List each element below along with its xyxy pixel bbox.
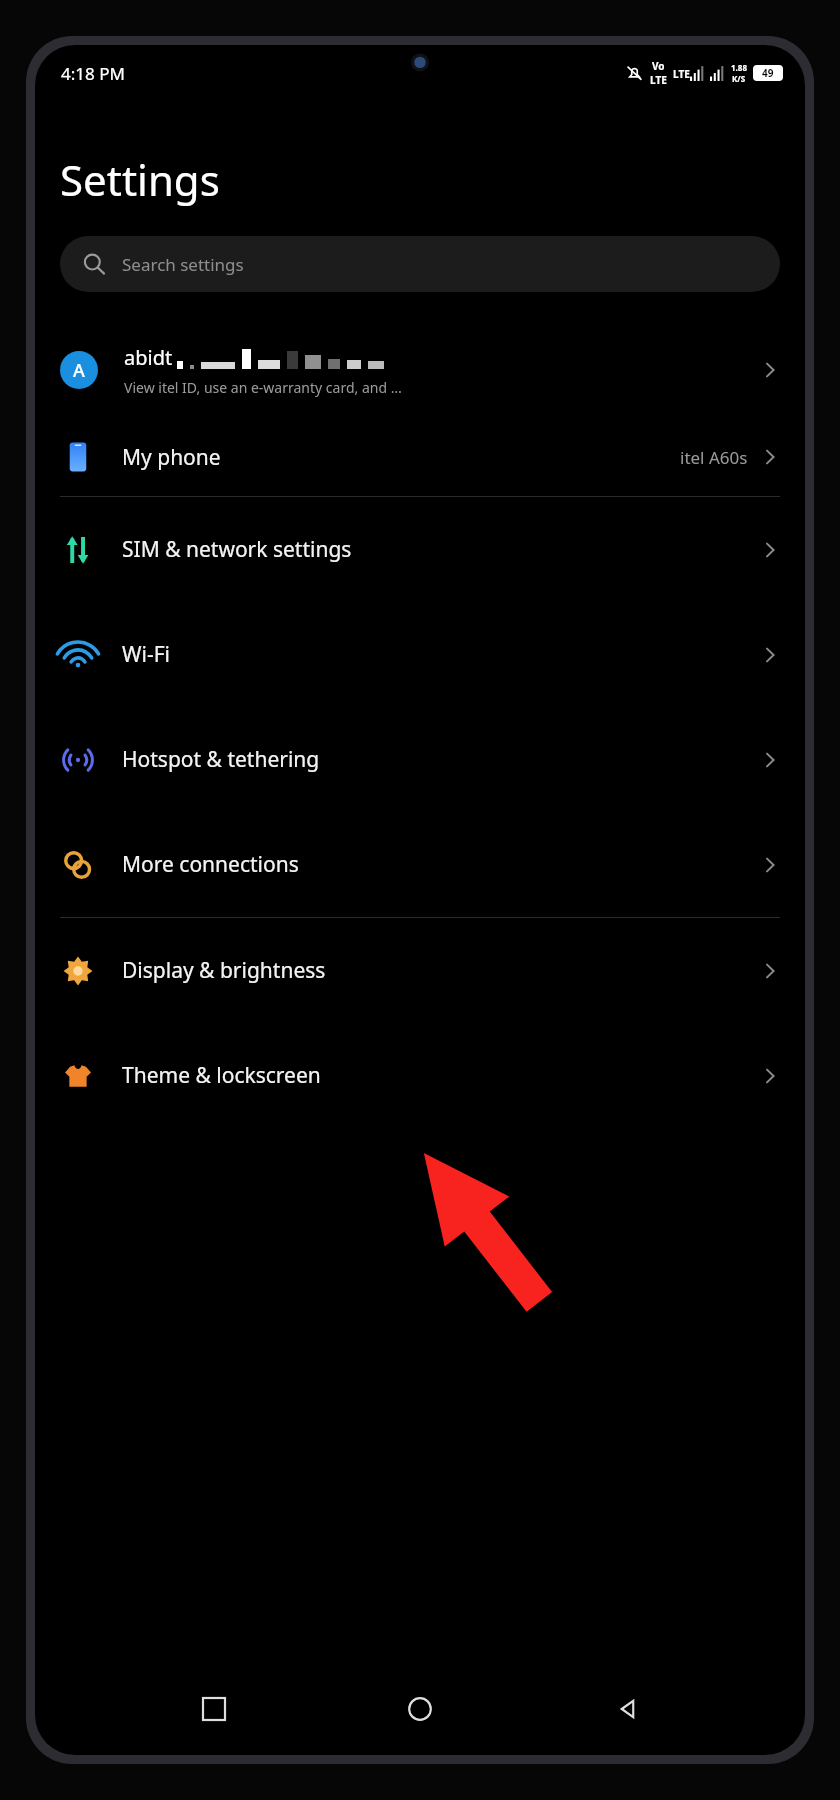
button[interactable]: My phone — [35, 418, 805, 496]
staticText: abidt — [124, 344, 173, 371]
button[interactable]: Back — [599, 1681, 655, 1737]
staticText: 4:18 PM — [61, 62, 125, 85]
staticText: Vo — [652, 59, 665, 73]
staticText: Wi-Fi — [122, 640, 760, 669]
button[interactable]: A — [35, 322, 805, 418]
button[interactable]: SIM & network settings — [35, 497, 805, 602]
staticText: A — [73, 358, 85, 383]
button[interactable]: Home — [392, 1681, 448, 1737]
button[interactable]: Recent apps — [186, 1681, 242, 1737]
staticText: LTE — [650, 73, 667, 87]
staticText: My phone — [122, 443, 680, 472]
staticText: View itel ID, use an e-warranty card, an… — [124, 378, 402, 397]
staticText: K/S — [732, 73, 746, 84]
staticText: Settings — [60, 151, 220, 208]
staticText: SIM & network settings — [122, 535, 760, 564]
staticText: LTE — [673, 67, 690, 81]
staticText: Hotspot & tethering — [122, 745, 760, 774]
button[interactable]: More connections — [35, 812, 805, 917]
button[interactable]: Theme & lockscreen — [35, 1023, 805, 1128]
staticText: 1.88 — [731, 62, 747, 73]
staticText: Theme & lockscreen — [122, 1061, 760, 1090]
staticText: itel A60s — [680, 446, 748, 469]
staticText: More connections — [122, 850, 760, 879]
button[interactable]: Search settings — [60, 236, 780, 292]
staticText: Search settings — [122, 253, 244, 276]
button[interactable]: Hotspot & tethering — [35, 707, 805, 812]
staticText: Display & brightness — [122, 956, 760, 985]
button[interactable]: Display & brightness — [35, 918, 805, 1023]
button[interactable]: Wi-Fi — [35, 602, 805, 707]
staticText: 49 — [762, 66, 774, 80]
